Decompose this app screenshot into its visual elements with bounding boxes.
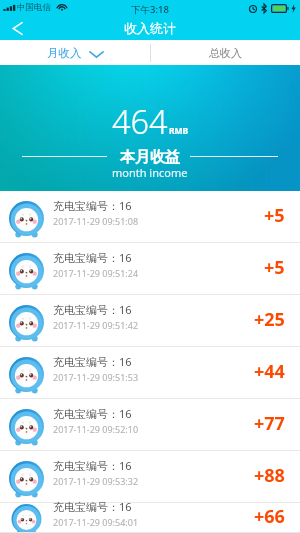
staticText: 2017-11-29 09:52:10 bbox=[53, 423, 139, 435]
button[interactable]: 充电宝编号：16 bbox=[0, 243, 300, 295]
button[interactable]: Back bbox=[0, 16, 34, 40]
staticText: 2017-11-29 09:51:42 bbox=[53, 319, 139, 331]
staticText: +44 bbox=[254, 359, 285, 384]
staticText: month income bbox=[112, 165, 188, 180]
button[interactable]: 总收入 bbox=[150, 40, 300, 65]
staticText: 464 bbox=[112, 99, 168, 143]
button[interactable]: 充电宝编号：16 bbox=[0, 503, 300, 533]
staticText: 月收入 bbox=[47, 46, 82, 60]
staticText: 充电宝编号：16 bbox=[53, 302, 132, 317]
staticText: 充电宝编号：16 bbox=[53, 458, 132, 473]
staticText: 2017-11-29 09:51:08 bbox=[53, 215, 139, 227]
staticText: +5 bbox=[264, 255, 285, 280]
staticText: +77 bbox=[254, 411, 285, 436]
button[interactable]: 充电宝编号：16 bbox=[0, 295, 300, 347]
staticText: +25 bbox=[254, 307, 285, 332]
staticText: 下午3:18 bbox=[131, 3, 169, 16]
staticText: +66 bbox=[254, 504, 285, 529]
button[interactable]: 充电宝编号：16 bbox=[0, 399, 300, 451]
staticText: 2017-11-29 09:51:53 bbox=[53, 371, 139, 383]
staticText: RMB bbox=[169, 125, 189, 137]
staticText: 2017-11-29 09:54:01 bbox=[53, 516, 139, 528]
staticText: +88 bbox=[254, 463, 285, 488]
staticText: 充电宝编号：16 bbox=[53, 198, 132, 213]
button[interactable]: 充电宝编号：16 bbox=[0, 191, 300, 243]
staticText: 收入统计 bbox=[124, 20, 176, 36]
button[interactable]: 充电宝编号：16 bbox=[0, 451, 300, 503]
staticText: 充电宝编号：16 bbox=[53, 499, 132, 514]
staticText: 总收入 bbox=[209, 46, 242, 60]
staticText: 充电宝编号：16 bbox=[53, 354, 132, 369]
staticText: 充电宝编号：16 bbox=[53, 406, 132, 421]
staticText: 中国电信 bbox=[17, 2, 51, 13]
staticText: 本月收益 bbox=[120, 148, 180, 167]
button[interactable]: 充电宝编号：16 bbox=[0, 347, 300, 399]
staticText: 2017-11-29 09:51:24 bbox=[53, 267, 139, 279]
staticText: 充电宝编号：16 bbox=[53, 250, 132, 265]
button[interactable]: 月收入 bbox=[0, 40, 150, 65]
staticText: 2017-11-29 09:53:32 bbox=[53, 475, 139, 487]
staticText: +5 bbox=[264, 203, 285, 228]
